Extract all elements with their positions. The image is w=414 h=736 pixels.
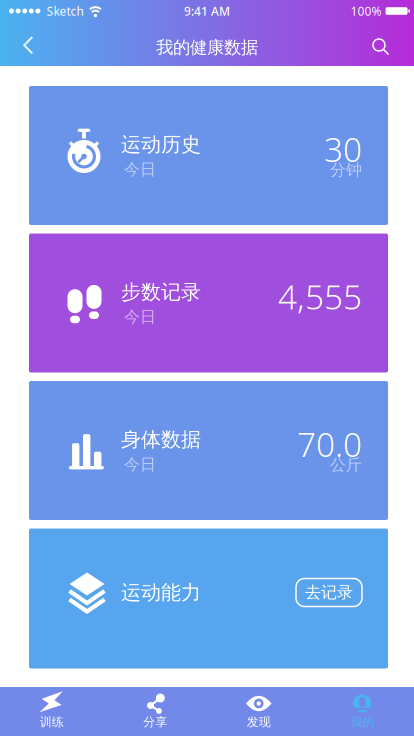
staticText: 运动历史 — [121, 132, 201, 157]
button[interactable]: 运动历史 — [29, 86, 388, 225]
staticText: 分钟 — [330, 160, 362, 180]
staticText: 去记录 — [305, 583, 353, 602]
button[interactable]: 步数记录 — [29, 233, 388, 372]
staticText: Sketch — [46, 3, 83, 19]
staticText: 运动能力 — [121, 580, 201, 605]
staticText: 训练 — [40, 715, 64, 729]
staticText: 4,555 — [278, 274, 362, 319]
button[interactable]: 运动能力 — [29, 528, 388, 668]
button[interactable]: 发现 — [207, 687, 310, 736]
staticText: 今日 — [124, 307, 156, 327]
staticText: 公斤 — [330, 455, 362, 475]
button[interactable]: 我的 — [310, 687, 414, 736]
staticText: 100% — [351, 3, 382, 19]
button[interactable]: Back — [0, 23, 34, 68]
staticText: 分享 — [143, 715, 167, 729]
staticText: 身体数据 — [121, 427, 201, 452]
staticText: 70.0 — [297, 422, 362, 466]
staticText: 30 — [324, 127, 362, 171]
staticText: 今日 — [124, 455, 156, 474]
staticText: 我的 — [350, 715, 374, 729]
staticText: 今日 — [124, 160, 156, 179]
button[interactable]: 去记录 — [296, 578, 362, 606]
button[interactable]: Search — [372, 23, 414, 67]
staticText: 我的健康数据 — [156, 37, 258, 58]
button[interactable]: 身体数据 — [29, 381, 388, 520]
button[interactable]: 训练 — [0, 687, 103, 736]
staticText: 步数记录 — [121, 280, 201, 304]
button[interactable]: 分享 — [103, 687, 207, 736]
staticText: 发现 — [247, 715, 271, 729]
staticText: 9:41 AM — [184, 3, 230, 19]
